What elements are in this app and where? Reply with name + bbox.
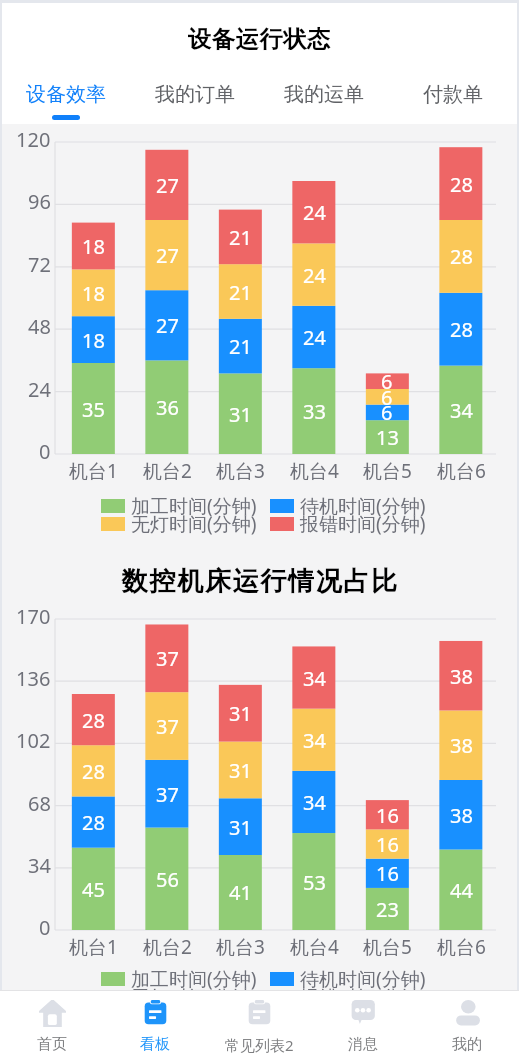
staticText: 16 <box>376 860 399 887</box>
staticText: 34 <box>303 789 326 816</box>
button[interactable]: 常见列表2 <box>207 991 311 1059</box>
staticText: 120 <box>16 126 51 153</box>
staticText: 机台5 <box>363 934 412 960</box>
staticText: 16 <box>376 802 399 829</box>
staticText: 21 <box>229 333 252 360</box>
staticText: 44 <box>450 877 473 904</box>
button[interactable]: 设备效率 <box>2 73 130 124</box>
staticText: 机台3 <box>216 934 265 960</box>
staticText: 21 <box>229 279 252 306</box>
staticText: 28 <box>450 243 473 270</box>
button[interactable]: 消息 <box>311 991 415 1059</box>
staticText: 报错时间(分钟) <box>300 984 426 1010</box>
staticText: 24 <box>303 199 326 226</box>
staticText: 24 <box>303 324 326 351</box>
staticText: 首页 <box>37 1035 67 1054</box>
staticText: 37 <box>156 713 179 740</box>
staticText: 53 <box>303 869 326 896</box>
staticText: 消息 <box>348 1035 378 1054</box>
staticText: 68 <box>28 790 51 817</box>
staticText: 45 <box>82 876 105 903</box>
staticText: 31 <box>229 700 252 727</box>
staticText: 72 <box>28 251 51 278</box>
staticText: 付款单 <box>423 82 483 107</box>
staticText: 加工时间(分钟) <box>131 966 257 992</box>
staticText: 170 <box>16 603 51 630</box>
staticText: 18 <box>82 327 105 354</box>
staticText: 38 <box>450 802 473 829</box>
staticText: 27 <box>156 312 179 339</box>
staticText: 机台2 <box>143 458 192 484</box>
staticText: 38 <box>450 663 473 690</box>
staticText: 31 <box>229 757 252 784</box>
staticText: 机台1 <box>69 458 118 484</box>
staticText: 27 <box>156 242 179 269</box>
staticText: 机台6 <box>437 934 486 960</box>
staticText: 机台2 <box>143 934 192 960</box>
staticText: 0 <box>39 914 51 941</box>
staticText: 34 <box>28 852 51 879</box>
staticText: 28 <box>82 758 105 785</box>
staticText: 28 <box>82 809 105 836</box>
staticText: 33 <box>303 398 326 425</box>
staticText: 加工时间(分钟) <box>131 493 257 519</box>
button[interactable]: 看板 <box>103 991 207 1059</box>
staticText: 机台3 <box>216 458 265 484</box>
staticText: 机台4 <box>290 458 339 484</box>
staticText: 机台4 <box>290 934 339 960</box>
button[interactable]: 付款单 <box>388 73 517 124</box>
staticText: 24 <box>28 376 51 403</box>
staticText: 机台6 <box>437 458 486 484</box>
button[interactable]: 首页 <box>0 991 103 1059</box>
staticText: 56 <box>156 866 179 893</box>
staticText: 37 <box>156 781 179 808</box>
staticText: 看板 <box>140 1035 170 1054</box>
staticText: 0 <box>39 438 51 465</box>
staticText: 16 <box>376 831 399 858</box>
staticText: 136 <box>16 665 51 692</box>
staticText: 28 <box>450 316 473 343</box>
staticText: 31 <box>229 401 252 428</box>
staticText: 设备运行状态 <box>188 25 331 54</box>
staticText: 待机时间(分钟) <box>300 966 426 992</box>
staticText: 36 <box>156 394 179 421</box>
button[interactable]: 我的订单 <box>130 73 259 124</box>
staticText: 96 <box>28 188 51 215</box>
staticText: 35 <box>82 396 105 423</box>
staticText: 37 <box>156 645 179 672</box>
staticText: 28 <box>450 171 473 198</box>
staticText: 102 <box>16 727 51 754</box>
staticText: 34 <box>450 397 473 424</box>
staticText: 报错时间(分钟) <box>300 511 426 537</box>
staticText: 24 <box>303 262 326 289</box>
button[interactable]: 我的 <box>415 991 519 1059</box>
staticText: 6 <box>381 399 393 426</box>
staticText: 41 <box>229 879 252 906</box>
staticText: 18 <box>82 233 105 260</box>
staticText: 数控机床运行情况占比 <box>121 565 398 598</box>
staticText: 31 <box>229 814 252 841</box>
staticText: 34 <box>303 727 326 754</box>
staticText: 48 <box>28 313 51 340</box>
staticText: 21 <box>229 224 252 251</box>
staticText: 无灯时间(分钟) <box>131 984 257 1010</box>
staticText: 28 <box>82 707 105 734</box>
staticText: 6 <box>381 368 393 395</box>
staticText: 常见列表2 <box>225 1035 294 1055</box>
staticText: 38 <box>450 732 473 759</box>
staticText: 机台1 <box>69 934 118 960</box>
staticText: 待机时间(分钟) <box>300 493 426 519</box>
button[interactable]: 我的运单 <box>259 73 388 124</box>
staticText: 我的 <box>452 1035 482 1054</box>
staticText: 23 <box>376 896 399 923</box>
staticText: 13 <box>376 424 399 451</box>
staticText: 18 <box>82 280 105 307</box>
staticText: 机台5 <box>363 458 412 484</box>
staticText: 我的运单 <box>284 82 364 107</box>
staticText: 无灯时间(分钟) <box>131 511 257 537</box>
staticText: 34 <box>303 665 326 692</box>
staticText: 27 <box>156 172 179 199</box>
staticText: 6 <box>381 384 393 411</box>
staticText: 设备效率 <box>26 82 106 107</box>
staticText: 我的订单 <box>155 82 235 107</box>
